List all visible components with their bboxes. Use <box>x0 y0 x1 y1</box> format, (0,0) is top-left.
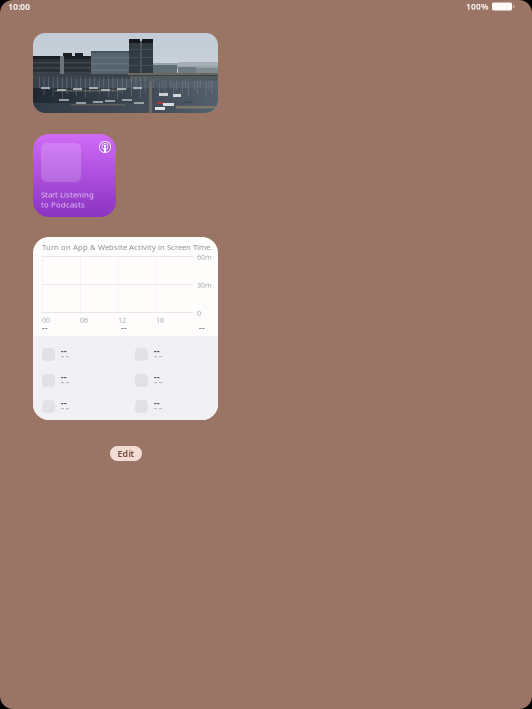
staticText: -- <box>61 371 67 382</box>
staticText: to Podcasts <box>41 199 85 210</box>
button[interactable]: Photos widget <box>33 33 218 113</box>
button[interactable]: Edit <box>110 446 142 461</box>
staticText: 100% <box>466 1 488 12</box>
button[interactable]: Start Listening to Podcasts <box>33 134 116 217</box>
staticText: -- <box>199 322 205 333</box>
staticText: 30m <box>197 280 212 290</box>
staticText: 10:00 <box>8 0 30 12</box>
staticText: 60m <box>197 252 212 262</box>
staticText: Edit <box>117 447 134 459</box>
staticText: 0 <box>197 308 201 318</box>
staticText: Turn on App & Website Activity in Screen… <box>42 242 212 252</box>
staticText: -- <box>154 345 160 356</box>
staticText: 00 <box>42 315 50 325</box>
staticText: 12 <box>118 315 126 325</box>
staticText: 06 <box>80 315 88 325</box>
staticText: -- <box>61 345 67 356</box>
staticText: -- <box>121 322 127 333</box>
button[interactable]: Screen Time widget <box>33 237 218 420</box>
staticText: -- <box>61 397 67 408</box>
staticText: 18 <box>156 315 164 325</box>
staticText: -- <box>154 371 160 382</box>
staticText: -- <box>42 322 48 333</box>
staticText: Start Listening <box>41 189 94 200</box>
staticText: -- <box>154 397 160 408</box>
